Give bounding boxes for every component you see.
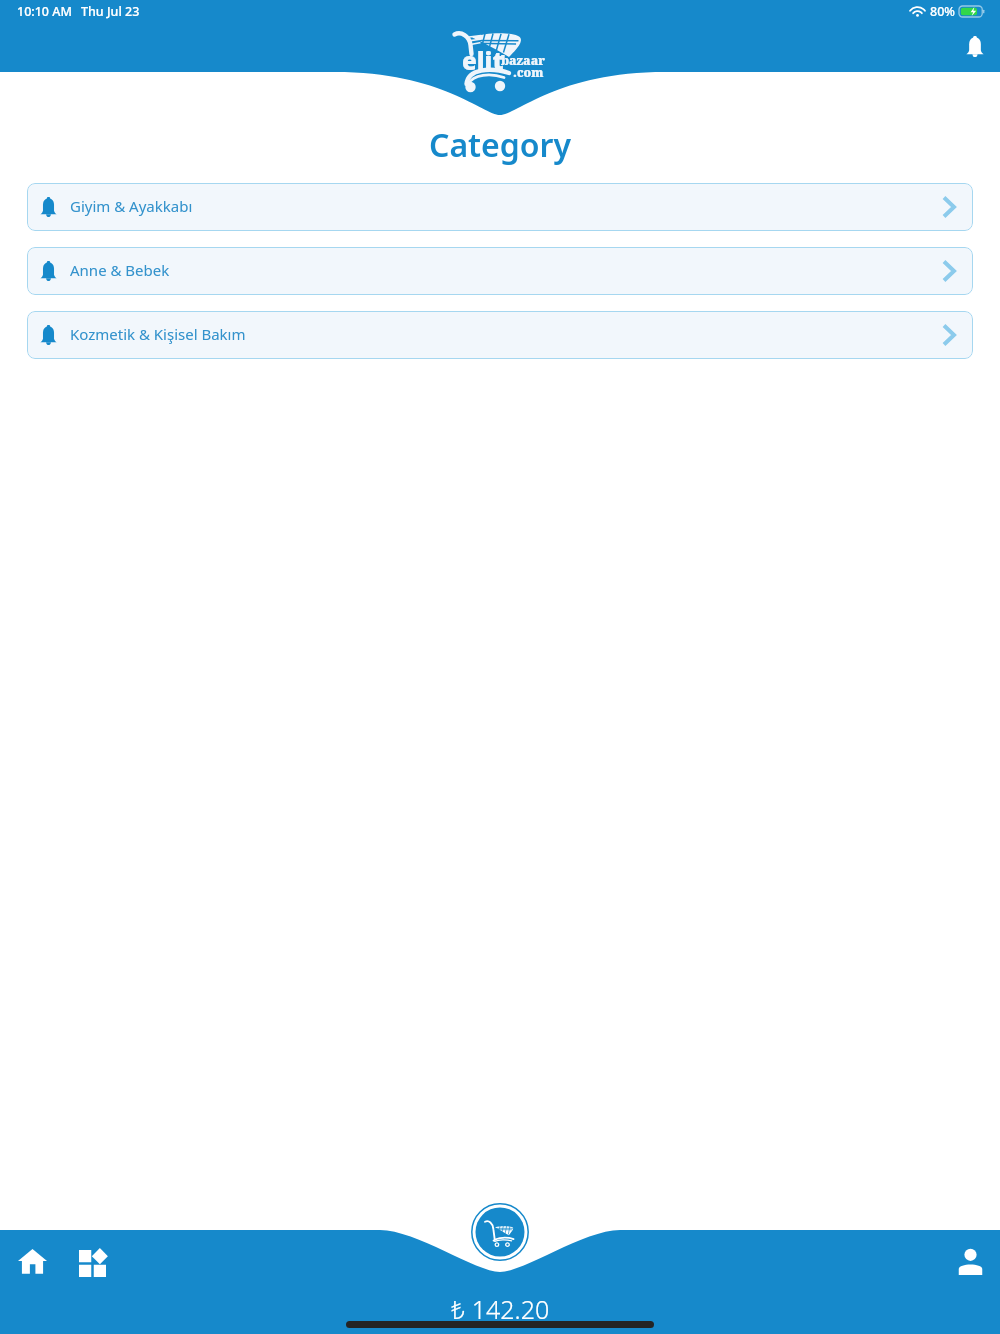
staticText: 80%: [930, 3, 955, 20]
button[interactable]: Categories: [70, 1240, 114, 1284]
staticText: Giyim & Ayakkabı: [70, 196, 193, 216]
staticText: .com: [513, 64, 544, 80]
button[interactable]: Kozmetik & Kişisel Bakım: [27, 311, 973, 359]
staticText: ₺ 142.20: [451, 1292, 550, 1326]
button[interactable]: Profile: [948, 1239, 992, 1283]
button[interactable]: Giyim & Ayakkabı: [27, 183, 973, 231]
staticText: Anne & Bebek: [70, 260, 170, 280]
button[interactable]: Home: [10, 1238, 54, 1282]
staticText: Category: [0, 123, 1000, 167]
staticText: Kozmetik & Kişisel Bakım: [70, 324, 246, 344]
staticText: Thu Jul 23: [81, 3, 140, 20]
button[interactable]: Cart: [471, 1203, 529, 1261]
button[interactable]: Anne & Bebek: [27, 247, 973, 295]
staticText: bazaar: [501, 52, 545, 68]
staticText: elit: [462, 44, 504, 77]
staticText: 10:10 AM: [17, 3, 72, 20]
button[interactable]: Notifications: [956, 28, 994, 66]
